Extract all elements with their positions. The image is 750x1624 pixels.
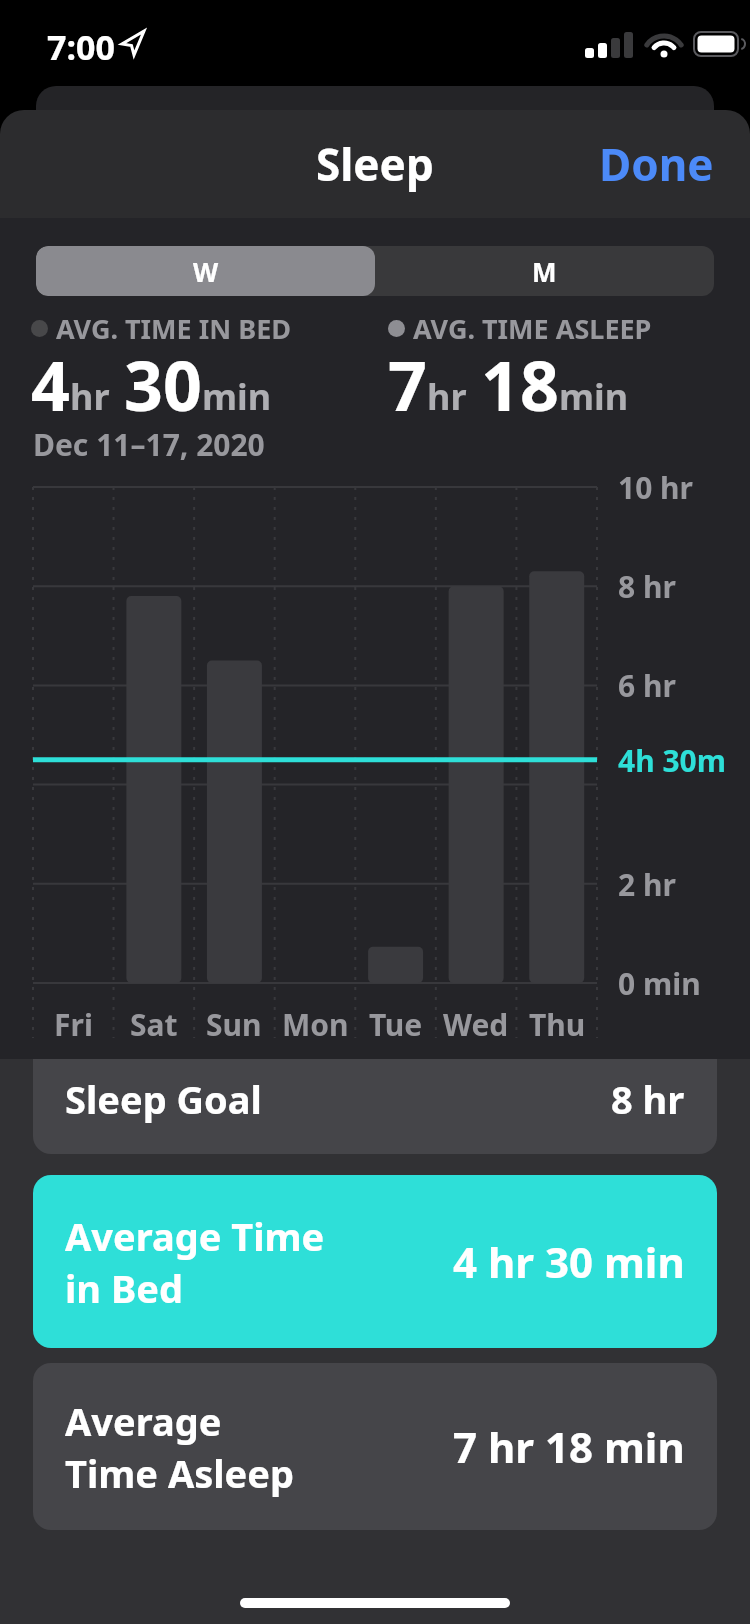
- staticText: AVG. TIME IN BED: [56, 310, 292, 347]
- staticText: 8 hr: [611, 1073, 685, 1125]
- staticText: 7: [388, 338, 427, 431]
- staticText: Dec 11–17, 2020: [33, 424, 265, 465]
- staticText: 7:00: [47, 24, 115, 70]
- staticText: 18: [481, 338, 559, 431]
- staticText: Tue: [369, 1004, 423, 1045]
- staticText: 2 hr: [618, 864, 676, 904]
- staticText: 4 hr 30 min: [453, 1233, 685, 1290]
- staticText: Fri: [54, 1004, 93, 1045]
- button[interactable]: Average Time in Bed: [33, 1175, 717, 1348]
- staticText: 8 hr: [618, 566, 676, 606]
- button[interactable]: M: [375, 246, 714, 296]
- staticText: min: [559, 372, 629, 421]
- staticText: 10 hr: [618, 467, 694, 507]
- staticText: Sleep: [316, 134, 434, 194]
- staticText: Average Time Asleep: [65, 1395, 294, 1499]
- staticText: Sun: [206, 1004, 262, 1045]
- staticText: AVG. TIME ASLEEP: [413, 310, 652, 347]
- staticText: 0 min: [618, 963, 701, 1003]
- staticText: W: [193, 254, 219, 289]
- staticText: 6 hr: [618, 665, 676, 705]
- staticText: Sleep Goal: [65, 1073, 262, 1125]
- staticText: Thu: [529, 1004, 586, 1045]
- button[interactable]: W: [36, 246, 375, 296]
- staticText: Average Time in Bed: [65, 1210, 325, 1314]
- button[interactable]: Average Time Asleep: [33, 1363, 717, 1530]
- staticText: 7 hr 18 min: [453, 1418, 685, 1475]
- staticText: hr: [70, 372, 110, 421]
- staticText: 4h 30m: [618, 740, 727, 780]
- staticText: Sat: [130, 1004, 178, 1045]
- staticText: Mon: [282, 1004, 349, 1045]
- staticText: 4: [31, 338, 70, 431]
- staticText: 30: [124, 338, 202, 431]
- staticText: hr: [427, 372, 467, 421]
- staticText: min: [202, 372, 272, 421]
- staticText: Wed: [443, 1004, 509, 1045]
- staticText: Done: [599, 134, 714, 194]
- staticText: M: [532, 254, 557, 289]
- button[interactable]: Sleep Goal: [33, 1059, 717, 1154]
- button[interactable]: Done: [599, 134, 714, 194]
